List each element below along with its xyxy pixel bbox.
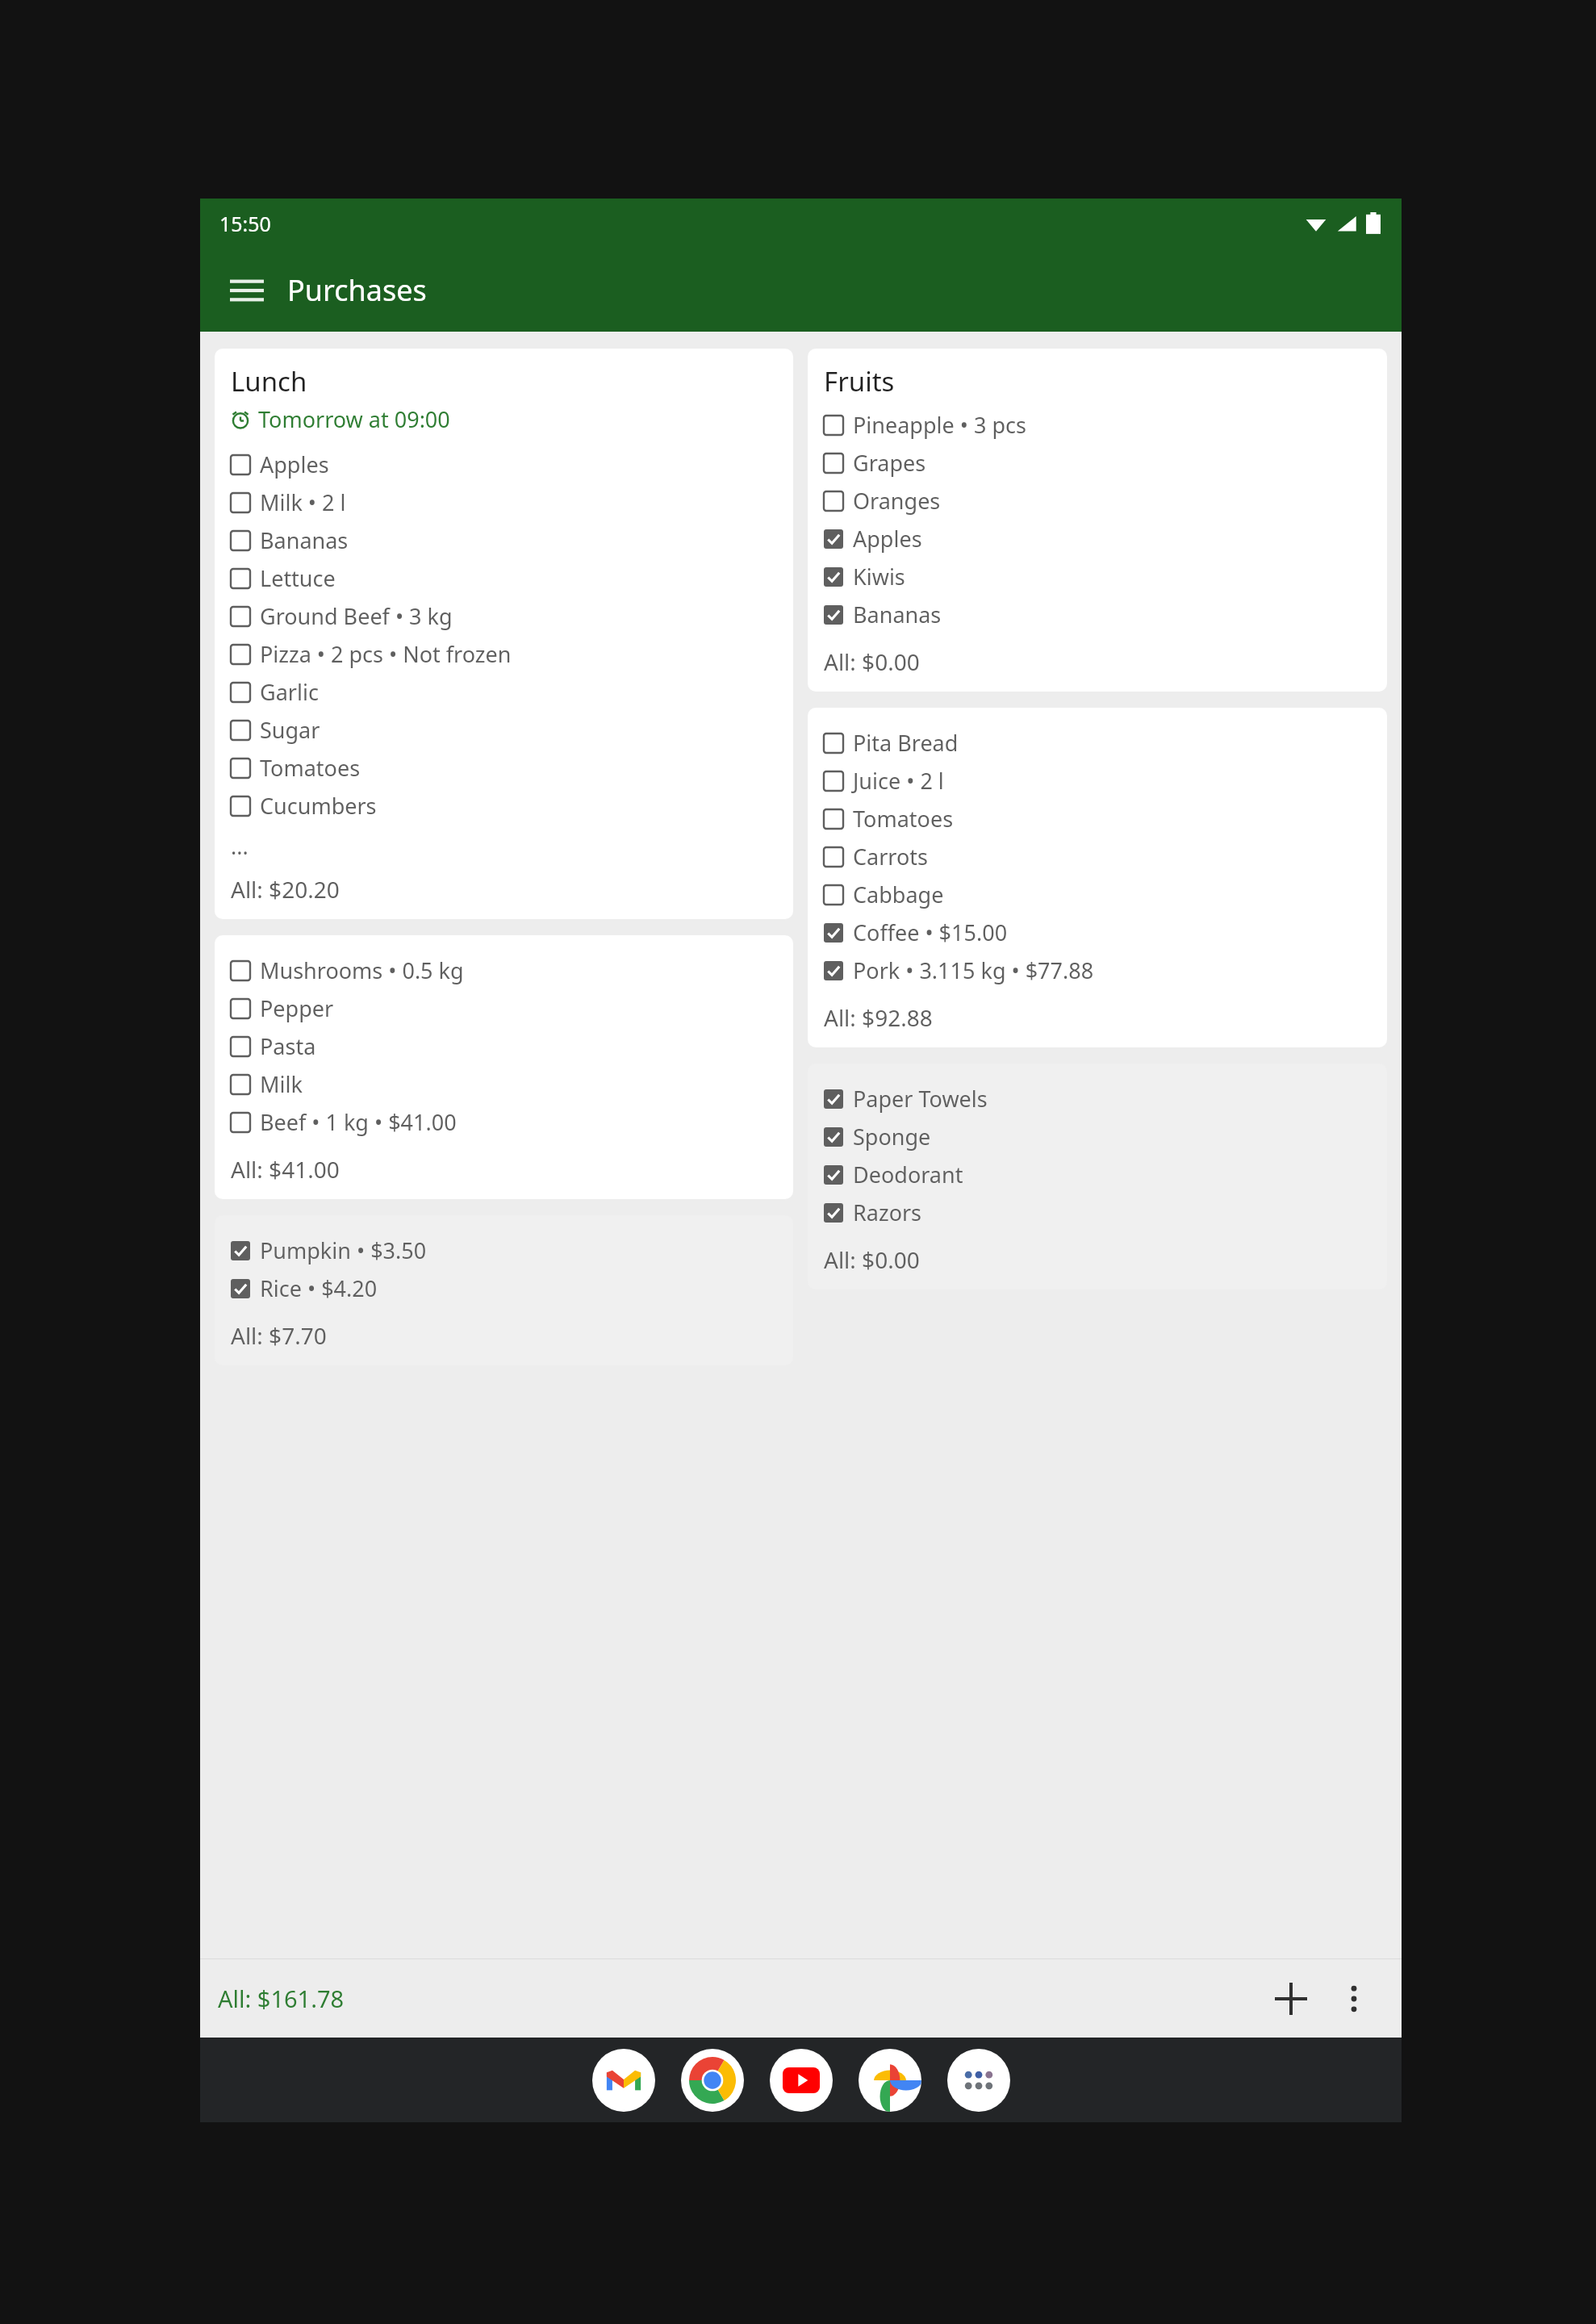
staticText: ...	[231, 831, 249, 861]
button[interactable]: All apps	[947, 2049, 1010, 2112]
staticText: Razors	[853, 1198, 922, 1227]
button[interactable]: Ground Beef • 3 kg	[231, 597, 777, 635]
staticText: Bananas	[853, 600, 942, 629]
button[interactable]: Pita Bread	[808, 708, 1387, 1047]
staticText: Oranges	[853, 486, 941, 516]
button[interactable]: Paper Towels	[808, 1064, 1387, 1289]
staticText: All: $92.88	[824, 1002, 933, 1033]
staticText: All: $7.70	[231, 1320, 327, 1351]
staticText: Apples	[853, 524, 922, 554]
staticText: Lunch	[231, 363, 307, 399]
button[interactable]: Kiwis	[824, 558, 1371, 596]
button[interactable]: Rice • $4.20	[231, 1269, 777, 1307]
button[interactable]: Juice • 2 l	[824, 762, 1371, 800]
button[interactable]: Paper Towels	[824, 1080, 1371, 1118]
button[interactable]: Fruits	[808, 349, 1387, 692]
staticText: Milk • 2 l	[260, 487, 346, 517]
button[interactable]: Pineapple • 3 pcs	[824, 406, 1371, 444]
staticText: Ground Beef • 3 kg	[260, 601, 453, 631]
button[interactable]: Chrome	[681, 2049, 744, 2112]
staticText: Tomatoes	[260, 753, 361, 783]
button[interactable]: Lunch	[215, 349, 793, 919]
button[interactable]: Apples	[824, 520, 1371, 558]
staticText: Sugar	[260, 715, 320, 745]
button[interactable]: Sponge	[824, 1118, 1371, 1156]
staticText: Pepper	[260, 993, 334, 1023]
button[interactable]: Bananas	[231, 521, 777, 559]
staticText: All: $0.00	[824, 646, 920, 677]
staticText: Carrots	[853, 842, 928, 871]
button[interactable]: Beef • 1 kg • $41.00	[231, 1103, 777, 1141]
button[interactable]: Pumpkin • $3.50	[215, 1215, 793, 1365]
staticText: Rice • $4.20	[260, 1273, 378, 1303]
button[interactable]: Oranges	[824, 482, 1371, 520]
button[interactable]: Gmail	[592, 2049, 655, 2112]
staticText: Apples	[260, 449, 329, 479]
staticText: Lettuce	[260, 563, 336, 593]
staticText: Tomorrow at 09:00	[258, 404, 450, 434]
button[interactable]: Google Photos	[859, 2049, 921, 2112]
button[interactable]: More options	[1322, 1967, 1385, 2030]
button[interactable]: Tomatoes	[824, 800, 1371, 838]
button[interactable]: Pumpkin • $3.50	[231, 1231, 777, 1269]
button[interactable]: Deodorant	[824, 1156, 1371, 1193]
staticText: Cabbage	[853, 880, 944, 909]
staticText: Kiwis	[853, 562, 905, 591]
button[interactable]: Garlic	[231, 673, 777, 711]
button[interactable]: Pita Bread	[824, 724, 1371, 762]
button[interactable]: Pizza • 2 pcs • Not frozen	[231, 635, 777, 673]
staticText: Sponge	[853, 1122, 931, 1152]
staticText: Pork • 3.115 kg • $77.88	[853, 955, 1094, 985]
staticText: Bananas	[260, 525, 349, 555]
staticText: All: $41.00	[231, 1154, 340, 1185]
button[interactable]: Bananas	[824, 596, 1371, 633]
staticText: Coffee • $15.00	[853, 917, 1008, 947]
staticText: All: $20.20	[231, 874, 340, 905]
button[interactable]: Open navigation drawer	[218, 261, 276, 320]
staticText: All: $0.00	[824, 1244, 920, 1275]
button[interactable]: Sugar	[231, 711, 777, 749]
staticText: All: $161.78	[218, 1983, 345, 2014]
button[interactable]: Milk	[231, 1065, 777, 1103]
staticText: Garlic	[260, 677, 319, 707]
staticText: 15:50	[219, 210, 271, 237]
button[interactable]: Razors	[824, 1193, 1371, 1231]
button[interactable]: Grapes	[824, 444, 1371, 482]
button[interactable]: Add	[1260, 1967, 1322, 2030]
button[interactable]: Coffee • $15.00	[824, 913, 1371, 951]
staticText: Pita Bread	[853, 728, 959, 758]
button[interactable]: Milk • 2 l	[231, 483, 777, 521]
staticText: Cucumbers	[260, 791, 377, 821]
button[interactable]: Mushrooms • 0.5 kg	[215, 935, 793, 1199]
staticText: Milk	[260, 1069, 303, 1099]
staticText: Beef • 1 kg • $41.00	[260, 1107, 457, 1137]
staticText: Purchases	[287, 270, 427, 310]
staticText: Pizza • 2 pcs • Not frozen	[260, 639, 512, 669]
staticText: Mushrooms • 0.5 kg	[260, 955, 464, 985]
staticText: Pumpkin • $3.50	[260, 1235, 427, 1265]
button[interactable]: Carrots	[824, 838, 1371, 876]
button[interactable]: Pasta	[231, 1027, 777, 1065]
button[interactable]: Pepper	[231, 989, 777, 1027]
button[interactable]: Apples	[231, 445, 777, 483]
button[interactable]: Pork • 3.115 kg • $77.88	[824, 951, 1371, 989]
button[interactable]: Mushrooms • 0.5 kg	[231, 951, 777, 989]
button[interactable]: Cabbage	[824, 876, 1371, 913]
button[interactable]: YouTube	[770, 2049, 833, 2112]
staticText: Tomatoes	[853, 804, 954, 834]
button[interactable]: Tomatoes	[231, 749, 777, 787]
staticText: Deodorant	[853, 1160, 963, 1189]
staticText: Pasta	[260, 1031, 316, 1061]
button[interactable]: Cucumbers	[231, 787, 777, 825]
staticText: Grapes	[853, 448, 926, 478]
staticText: Pineapple • 3 pcs	[853, 410, 1026, 440]
staticText: Fruits	[824, 363, 895, 399]
staticText: Juice • 2 l	[853, 766, 944, 796]
button[interactable]: Lettuce	[231, 559, 777, 597]
staticText: Paper Towels	[853, 1084, 988, 1114]
